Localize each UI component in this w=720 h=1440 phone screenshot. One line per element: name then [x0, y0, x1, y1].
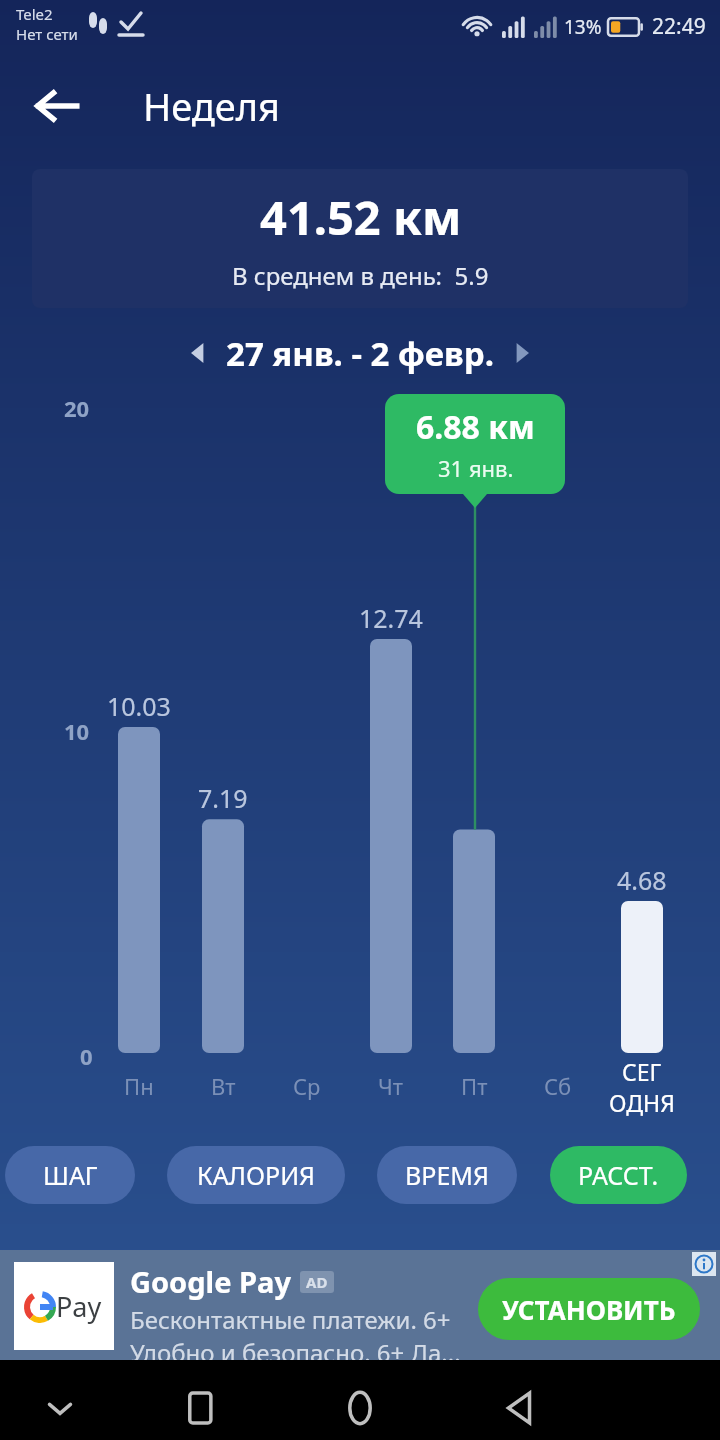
button[interactable]: Previous week	[172, 326, 226, 380]
staticText: ВРЕМЯ	[405, 1158, 489, 1192]
staticText: 7.19	[198, 781, 248, 815]
staticText: СЕГ	[622, 1056, 662, 1087]
staticText: Пт	[461, 1071, 488, 1101]
button[interactable]: Back	[482, 1370, 558, 1440]
staticText: Сб	[544, 1071, 572, 1101]
staticText: 0	[80, 1041, 93, 1071]
button[interactable]: Back	[22, 71, 92, 141]
staticText: Неделя	[143, 80, 281, 132]
staticText: Бесконтактные платежи. 6+	[130, 1303, 451, 1336]
button[interactable]: РАССТ.	[550, 1146, 687, 1204]
button[interactable]: 41.52 км	[32, 169, 688, 308]
staticText: 6.88 км	[416, 405, 535, 449]
staticText: Ср	[293, 1071, 321, 1101]
staticText: 13%	[564, 14, 602, 40]
staticText: 22:49	[652, 12, 706, 41]
staticText: 12.74	[359, 601, 423, 635]
staticText: 27 янв. - 2 февр.	[226, 331, 494, 376]
staticText: 10	[64, 716, 90, 746]
staticText: Пн	[124, 1071, 154, 1101]
staticText: 31 янв.	[438, 453, 514, 483]
staticText: ШАГ	[43, 1158, 98, 1192]
staticText: 41.52 км	[260, 185, 462, 249]
staticText: Google Pay	[130, 1262, 292, 1301]
staticText: 20	[64, 393, 90, 423]
button[interactable]: ШАГ	[5, 1146, 135, 1204]
staticText: 4.68	[617, 863, 667, 897]
staticText: Pay	[56, 1288, 102, 1325]
button[interactable]: Next week	[494, 326, 548, 380]
button[interactable]: Recents	[163, 1370, 239, 1440]
button[interactable]: Hide	[22, 1370, 98, 1440]
staticText: Нет сети	[16, 24, 78, 44]
staticText: КАЛОРИЯ	[197, 1158, 316, 1192]
staticText: Вт	[211, 1071, 236, 1101]
staticText: Tele2	[16, 4, 53, 24]
button[interactable]: Pay	[0, 1250, 720, 1360]
staticText: 10.03	[107, 689, 171, 723]
button[interactable]: Home	[322, 1370, 398, 1440]
staticText: AD	[306, 1272, 328, 1292]
button[interactable]: КАЛОРИЯ	[167, 1146, 345, 1204]
button[interactable]: ВРЕМЯ	[377, 1146, 517, 1204]
staticText: В среднем в день: 5.9	[232, 259, 489, 292]
staticText: РАССТ.	[578, 1158, 659, 1192]
staticText: ОДНЯ	[609, 1087, 675, 1118]
button[interactable]: УСТАНОВИТЬ	[478, 1278, 700, 1340]
button[interactable]: Ad info	[692, 1252, 716, 1276]
staticText: УСТАНОВИТЬ	[502, 1292, 676, 1327]
button[interactable]: 6.88 км	[385, 394, 565, 494]
staticText: Удобно и безопасно. 6+ Да...	[130, 1336, 461, 1369]
staticText: Чт	[378, 1071, 404, 1101]
